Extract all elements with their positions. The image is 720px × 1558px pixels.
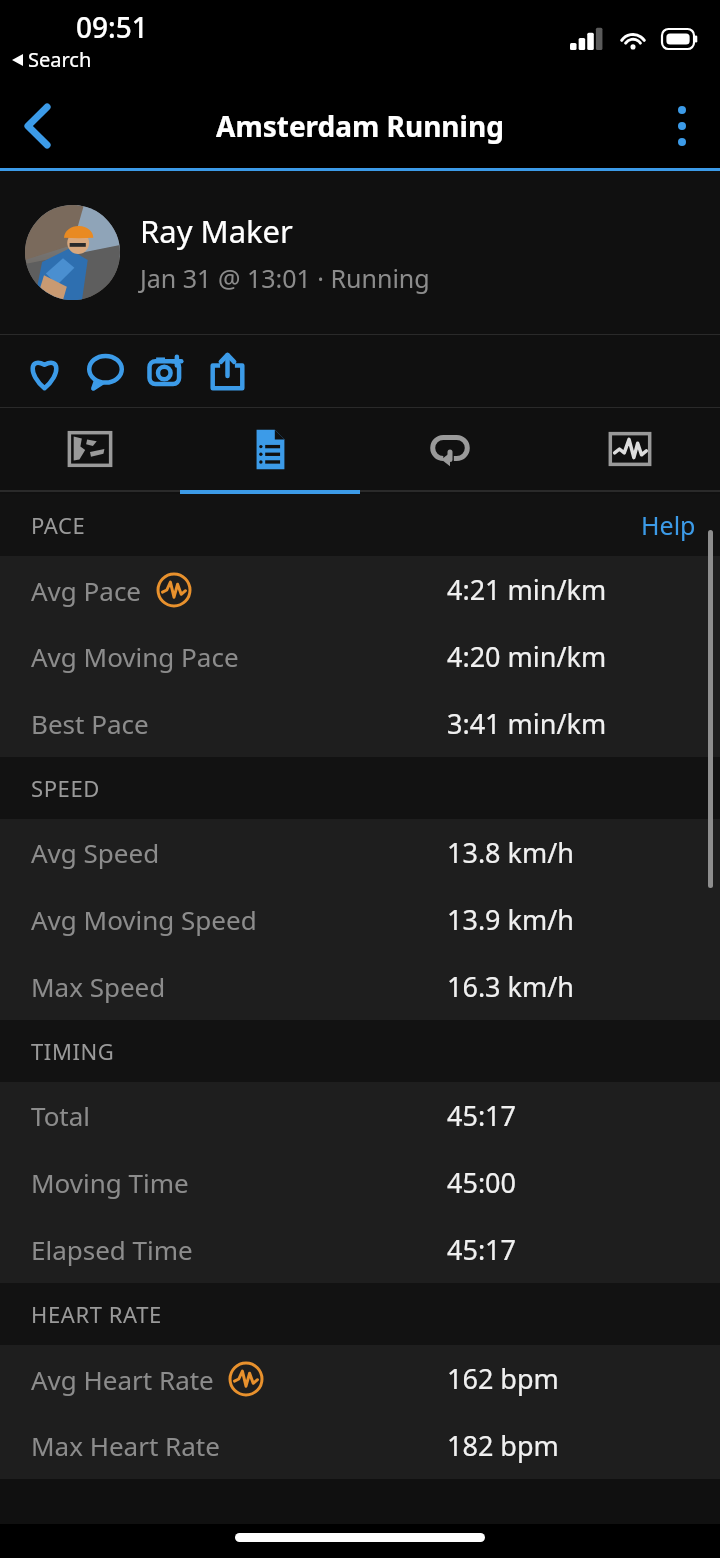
button[interactable]: Avg Moving Speed <box>0 886 720 953</box>
staticText: 162 bpm <box>447 1360 559 1397</box>
staticText: Moving Time <box>31 1165 189 1200</box>
staticText: HEART RATE <box>31 1299 162 1329</box>
button[interactable]: Avg Moving Pace <box>0 623 720 690</box>
staticText: Search <box>28 46 92 73</box>
staticText: 09:51 <box>76 8 148 46</box>
button[interactable]: Max Heart Rate <box>0 1412 720 1479</box>
staticText: Elapsed Time <box>31 1232 193 1267</box>
staticText: Avg Moving Pace <box>31 639 239 674</box>
staticText: Avg Speed <box>31 835 160 870</box>
staticText: Amsterdam Running <box>216 107 504 145</box>
staticText: 4:20 min/km <box>447 638 607 675</box>
staticText: 4:21 min/km <box>447 571 607 608</box>
button[interactable]: Avg Heart Rate <box>0 1345 720 1412</box>
button[interactable]: Best Pace <box>0 690 720 757</box>
button[interactable]: Help <box>617 498 720 552</box>
staticText: 16.3 km/h <box>447 968 574 1005</box>
staticText: PACE <box>31 510 86 540</box>
button[interactable]: Comment <box>75 335 136 407</box>
button[interactable]: Moving Time <box>0 1149 720 1216</box>
staticText: 45:17 <box>447 1231 517 1268</box>
button[interactable]: Max Speed <box>0 953 720 1020</box>
button[interactable]: Map <box>0 408 180 490</box>
button[interactable]: Back <box>0 88 76 164</box>
staticText: SPEED <box>31 773 100 803</box>
button[interactable]: Like <box>14 335 75 407</box>
button[interactable]: Charts <box>540 408 720 490</box>
staticText: 13.9 km/h <box>447 901 574 938</box>
staticText: Best Pace <box>31 706 149 741</box>
button[interactable]: Avg Pace <box>0 556 720 623</box>
staticText: Ray Maker <box>140 210 293 252</box>
button[interactable]: Elapsed Time <box>0 1216 720 1283</box>
staticText: TIMING <box>31 1036 115 1066</box>
staticText: Max Heart Rate <box>31 1428 220 1463</box>
button[interactable]: Total <box>0 1082 720 1149</box>
staticText: 3:41 min/km <box>447 705 607 742</box>
staticText: Help <box>641 508 696 542</box>
button[interactable]: Ray Maker <box>0 171 720 334</box>
staticText: 45:00 <box>447 1164 517 1201</box>
staticText: 13.8 km/h <box>447 834 574 871</box>
staticText: Avg Moving Speed <box>31 902 257 937</box>
staticText: Jan 31 @ 13:01 · Running <box>140 261 430 295</box>
button[interactable]: Laps <box>360 408 540 490</box>
staticText: Avg Heart Rate <box>31 1362 214 1397</box>
staticText: 182 bpm <box>447 1427 559 1464</box>
staticText: Total <box>31 1098 91 1133</box>
button[interactable]: More options <box>644 88 720 164</box>
button[interactable]: Add photo <box>136 335 197 407</box>
button[interactable]: Share <box>197 335 258 407</box>
staticText: Max Speed <box>31 969 166 1004</box>
button[interactable]: Details <box>180 408 360 490</box>
staticText: 45:17 <box>447 1097 517 1134</box>
button[interactable]: Avg Speed <box>0 819 720 886</box>
staticText: Avg Pace <box>31 573 142 608</box>
